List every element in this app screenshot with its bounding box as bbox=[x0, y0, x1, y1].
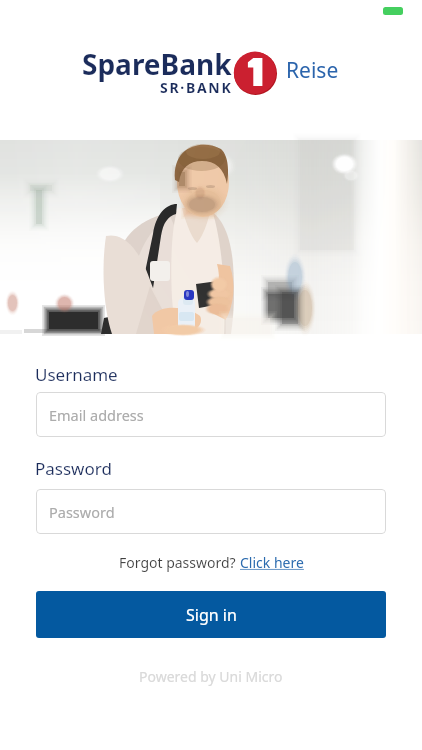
staticText: Username bbox=[35, 363, 118, 386]
staticText: Click here bbox=[240, 553, 304, 572]
button[interactable]: Email address bbox=[36, 392, 386, 437]
staticText: Powered by Uni Micro bbox=[139, 667, 283, 686]
button[interactable]: Sign in bbox=[36, 591, 386, 638]
staticText: Email address bbox=[49, 405, 144, 425]
staticText: SpareBank bbox=[82, 45, 232, 83]
staticText: SR·BANK bbox=[160, 78, 233, 97]
button[interactable]: Password bbox=[36, 489, 386, 534]
staticText: Password bbox=[35, 457, 112, 480]
staticText: Sign in bbox=[186, 604, 237, 626]
staticText: Reise bbox=[286, 56, 339, 85]
button[interactable]: Click here bbox=[240, 553, 304, 572]
staticText: Password bbox=[49, 502, 115, 522]
staticText: Forgot password? bbox=[119, 553, 240, 572]
